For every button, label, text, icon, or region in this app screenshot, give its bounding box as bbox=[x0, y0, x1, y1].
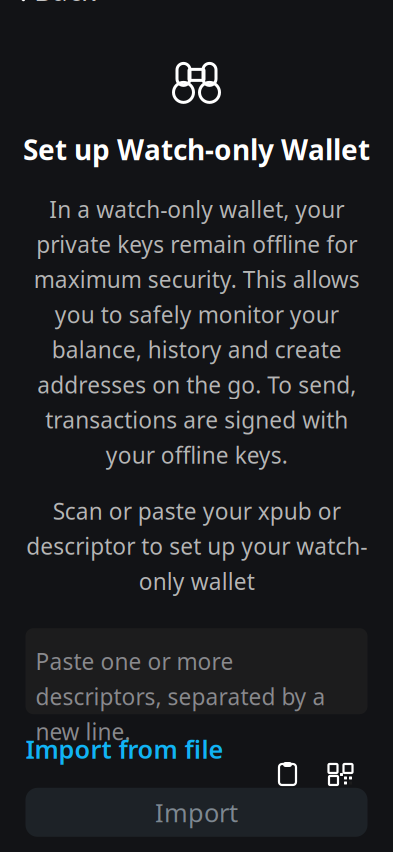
button[interactable]: Import bbox=[25, 788, 367, 837]
staticText: Scan or paste your xpub or descriptor to… bbox=[26, 496, 367, 596]
staticText: In a watch-only wallet, your private key… bbox=[33, 194, 359, 470]
staticText: Import from file bbox=[25, 732, 223, 766]
staticText: Set up Watch-only Wallet bbox=[23, 131, 370, 168]
button[interactable]: Back bbox=[4, 0, 104, 14]
staticText: Import bbox=[155, 795, 238, 829]
button[interactable]: Import from file bbox=[25, 728, 223, 770]
button[interactable]: Scan QR code bbox=[323, 756, 357, 792]
button[interactable]: Paste one or more descriptors, separated… bbox=[25, 628, 367, 714]
staticText: Paste one or more descriptors, separated… bbox=[35, 646, 325, 746]
staticText: Back bbox=[34, 0, 96, 9]
button[interactable]: Paste from clipboard bbox=[271, 756, 303, 792]
